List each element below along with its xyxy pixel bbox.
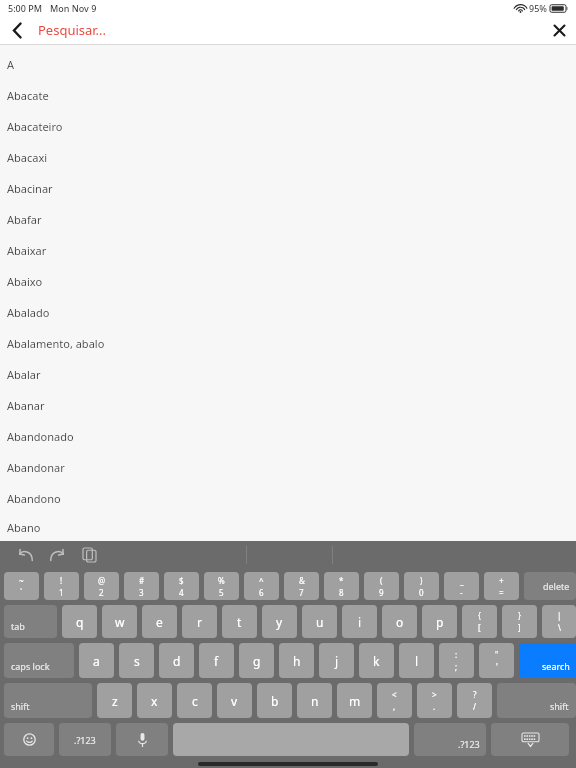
button[interactable]: Paste	[76, 542, 102, 568]
button[interactable]: :	[439, 643, 474, 678]
button[interactable]: f	[199, 643, 234, 678]
button[interactable]: .?123	[414, 723, 486, 756]
button[interactable]: g	[239, 643, 274, 678]
button[interactable]: |	[542, 605, 576, 638]
button[interactable]: Hide keyboard	[491, 723, 569, 756]
button[interactable]: c	[177, 683, 212, 718]
button[interactable]: &	[284, 572, 319, 600]
button[interactable]: Abaixar	[0, 235, 576, 266]
button[interactable]: l	[399, 643, 434, 678]
button[interactable]: Back	[0, 16, 34, 44]
button[interactable]: Pesquisar...	[38, 16, 148, 44]
staticText: +	[499, 575, 504, 586]
staticText: 5:00 PM	[8, 2, 42, 14]
staticText: Abalamento, abalo	[7, 336, 105, 351]
staticText: &	[299, 575, 305, 586]
button[interactable]: Redo	[44, 542, 70, 568]
button[interactable]: e	[142, 605, 177, 638]
button[interactable]: Abano	[0, 514, 576, 541]
button[interactable]: ^	[244, 572, 279, 600]
button[interactable]: Abalamento, abalo	[0, 328, 576, 359]
button[interactable]: #	[124, 572, 159, 600]
staticText: y	[276, 614, 283, 630]
button[interactable]: Abandonado	[0, 421, 576, 452]
button[interactable]: d	[159, 643, 194, 678]
staticText: l	[415, 653, 419, 669]
button[interactable]: (	[364, 572, 399, 600]
button[interactable]: Abalado	[0, 297, 576, 328]
button[interactable]: caps lock	[4, 643, 74, 678]
button[interactable]: Abalar	[0, 359, 576, 390]
button[interactable]: shift	[4, 683, 92, 718]
staticText: "	[495, 649, 499, 660]
button[interactable]: z	[97, 683, 132, 718]
button[interactable]: @	[84, 572, 119, 600]
button[interactable]: Abacaxi	[0, 142, 576, 173]
button[interactable]: s	[119, 643, 154, 678]
button[interactable]: Abacateiro	[0, 111, 576, 142]
button[interactable]: v	[217, 683, 252, 718]
button[interactable]: $	[164, 572, 199, 600]
button[interactable]: h	[279, 643, 314, 678]
staticText: n	[311, 693, 319, 709]
staticText: )	[420, 575, 423, 586]
button[interactable]: Abanar	[0, 390, 576, 421]
button[interactable]: b	[257, 683, 292, 718]
button[interactable]: q	[62, 605, 97, 638]
staticText: .?123	[458, 738, 480, 750]
button[interactable]: "	[479, 643, 514, 678]
staticText: r	[197, 614, 202, 630]
button[interactable]: o	[382, 605, 417, 638]
button[interactable]: n	[297, 683, 332, 718]
button[interactable]: <	[377, 683, 412, 718]
button[interactable]: Abaixo	[0, 266, 576, 297]
button[interactable]: *	[324, 572, 359, 600]
button[interactable]: ?	[457, 683, 492, 718]
button[interactable]: Abandonar	[0, 452, 576, 483]
button[interactable]: delete	[524, 572, 576, 600]
button[interactable]: )	[404, 572, 439, 600]
button[interactable]: a	[79, 643, 114, 678]
button[interactable]: !	[44, 572, 79, 600]
button[interactable]: search	[519, 643, 576, 678]
button[interactable]: }	[502, 605, 537, 638]
button[interactable]: j	[319, 643, 354, 678]
button[interactable]: Abacinar	[0, 173, 576, 204]
button[interactable]: +	[484, 572, 519, 600]
button[interactable]: >	[417, 683, 452, 718]
button[interactable]: Emoji	[4, 723, 54, 756]
button[interactable]: .?123	[59, 723, 111, 756]
button[interactable]: %	[204, 572, 239, 600]
staticText: Abacaxi	[7, 150, 48, 165]
button[interactable]: Close	[542, 16, 576, 44]
staticText: Abalar	[7, 367, 41, 382]
staticText: A	[7, 57, 15, 72]
button[interactable]: t	[222, 605, 257, 638]
staticText: 9	[379, 587, 384, 598]
button[interactable]: _	[444, 572, 479, 600]
button[interactable]: i	[342, 605, 377, 638]
staticText: *	[339, 575, 344, 586]
button[interactable]: k	[359, 643, 394, 678]
button[interactable]: Abacate	[0, 80, 576, 111]
staticText: Abalado	[7, 305, 50, 320]
button[interactable]: ~	[4, 572, 39, 600]
button[interactable]: y	[262, 605, 297, 638]
button[interactable]: Abandono	[0, 483, 576, 514]
staticText: %	[218, 575, 225, 586]
button[interactable]: r	[182, 605, 217, 638]
button[interactable]: p	[422, 605, 457, 638]
button[interactable]: w	[102, 605, 137, 638]
staticText: e	[156, 614, 163, 630]
button[interactable]: m	[337, 683, 372, 718]
button[interactable]: tab	[4, 605, 57, 638]
button[interactable]: x	[137, 683, 172, 718]
button[interactable]: u	[302, 605, 337, 638]
button[interactable]: A	[0, 49, 576, 80]
button[interactable]: Undo	[12, 542, 38, 568]
button[interactable]: {	[462, 605, 497, 638]
button[interactable]: Dictation	[116, 723, 168, 756]
button[interactable]: shift	[497, 683, 576, 718]
button[interactable]: Abafar	[0, 204, 576, 235]
